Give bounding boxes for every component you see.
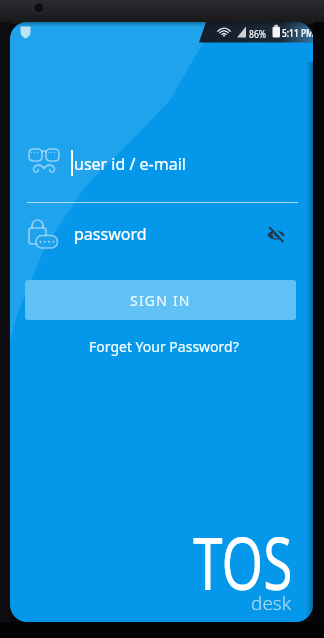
- staticText: 5:11 PM: [282, 26, 313, 40]
- staticText: password: [74, 223, 147, 245]
- staticText: user id / e-mail: [74, 153, 186, 175]
- staticText: TOS: [193, 512, 293, 611]
- staticText: desk: [251, 590, 292, 616]
- button[interactable]: password: [27, 214, 298, 254]
- staticText: SIGN IN: [130, 291, 191, 310]
- staticText: 86%: [249, 27, 266, 41]
- button[interactable]: user id / e-mail: [27, 144, 298, 203]
- button[interactable]: SIGN IN: [25, 280, 296, 320]
- button[interactable]: [263, 222, 287, 246]
- button[interactable]: Forget Your Password?: [89, 337, 239, 356]
